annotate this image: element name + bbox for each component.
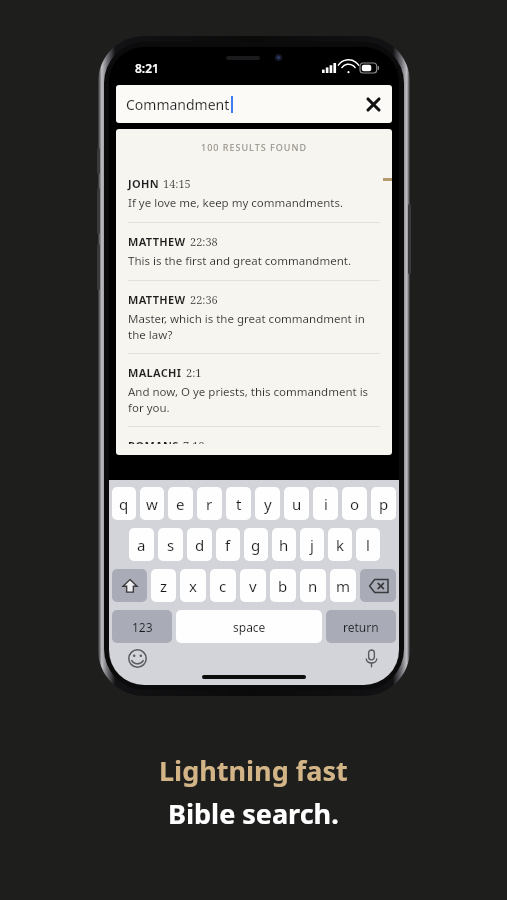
staticText: return bbox=[343, 619, 379, 635]
button[interactable]: Backspace bbox=[360, 569, 396, 602]
staticText: d bbox=[195, 535, 205, 555]
button[interactable]: Emoji bbox=[123, 644, 151, 672]
button[interactable]: ROMANS bbox=[116, 427, 392, 455]
staticText: 100 RESULTS FOUND bbox=[201, 141, 308, 153]
button[interactable]: j bbox=[300, 528, 324, 561]
button[interactable]: m bbox=[330, 569, 356, 602]
staticText: And now, O ye priests, this commandment … bbox=[128, 384, 380, 415]
staticText: MATTHEW bbox=[128, 292, 186, 307]
button[interactable]: k bbox=[328, 528, 352, 561]
staticText: f bbox=[225, 535, 231, 555]
staticText: m bbox=[336, 576, 351, 596]
staticText: q bbox=[119, 494, 129, 514]
button[interactable]: v bbox=[240, 569, 266, 602]
button[interactable]: o bbox=[342, 487, 367, 520]
button[interactable]: MATTHEW bbox=[116, 223, 392, 280]
button[interactable]: MALACHI bbox=[116, 354, 392, 426]
staticText: Master, which is the great commandment i… bbox=[128, 311, 380, 342]
staticText: If ye love me, keep my commandments. bbox=[128, 195, 343, 211]
staticText: g bbox=[251, 535, 261, 555]
staticText: b bbox=[278, 576, 288, 596]
staticText: MALACHI bbox=[128, 365, 182, 380]
staticText: i bbox=[324, 494, 328, 514]
button[interactable]: Commandment bbox=[116, 85, 392, 123]
staticText: s bbox=[167, 535, 175, 555]
staticText: w bbox=[146, 494, 158, 514]
staticText: Bible search. bbox=[168, 795, 339, 832]
staticText: z bbox=[160, 576, 168, 596]
button[interactable]: JOHN bbox=[116, 165, 392, 222]
button[interactable]: y bbox=[255, 487, 280, 520]
button[interactable]: x bbox=[180, 569, 206, 602]
staticText: This is the first and great commandment. bbox=[128, 253, 351, 269]
button[interactable]: s bbox=[158, 528, 183, 561]
staticText: 8:21 bbox=[135, 60, 159, 76]
button[interactable]: r bbox=[197, 487, 222, 520]
button[interactable]: g bbox=[244, 528, 268, 561]
staticText: a bbox=[137, 535, 146, 555]
button[interactable]: b bbox=[270, 569, 296, 602]
button[interactable]: l bbox=[356, 528, 380, 561]
staticText: h bbox=[279, 535, 289, 555]
button[interactable]: 123 bbox=[112, 610, 172, 643]
button[interactable]: Shift bbox=[112, 569, 147, 602]
button[interactable]: e bbox=[168, 487, 193, 520]
staticText: 123 bbox=[132, 619, 153, 635]
staticText: k bbox=[336, 535, 345, 555]
button[interactable]: f bbox=[216, 528, 240, 561]
staticText: MATTHEW bbox=[128, 234, 186, 249]
button[interactable]: a bbox=[129, 528, 154, 561]
button[interactable]: d bbox=[187, 528, 212, 561]
button[interactable]: space bbox=[176, 610, 322, 643]
staticText: 22:38 bbox=[190, 234, 218, 249]
button[interactable]: p bbox=[371, 487, 396, 520]
staticText: 14:15 bbox=[163, 176, 191, 191]
staticText: x bbox=[189, 576, 197, 596]
staticText: Commandment bbox=[126, 95, 230, 114]
button[interactable]: MATTHEW bbox=[116, 281, 392, 353]
staticText: t bbox=[236, 494, 242, 514]
staticText: o bbox=[350, 494, 360, 514]
button[interactable]: z bbox=[151, 569, 176, 602]
staticText: u bbox=[292, 494, 302, 514]
button[interactable]: w bbox=[140, 487, 164, 520]
staticText: j bbox=[310, 535, 314, 555]
staticText: 2:1 bbox=[186, 365, 202, 380]
button[interactable]: return bbox=[326, 610, 396, 643]
button[interactable]: u bbox=[284, 487, 309, 520]
staticText: 7:12 bbox=[183, 438, 205, 444]
staticText: c bbox=[219, 576, 227, 596]
staticText: JOHN bbox=[128, 176, 159, 191]
button[interactable]: n bbox=[300, 569, 326, 602]
staticText: Lightning fast bbox=[159, 752, 348, 789]
staticText: v bbox=[249, 576, 257, 596]
staticText: space bbox=[233, 619, 266, 635]
staticText: e bbox=[176, 494, 185, 514]
button[interactable]: Clear search bbox=[360, 91, 386, 117]
button[interactable]: Dictation bbox=[357, 644, 385, 672]
staticText: r bbox=[206, 494, 213, 514]
staticText: n bbox=[308, 576, 318, 596]
button[interactable]: h bbox=[272, 528, 296, 561]
staticText: y bbox=[264, 494, 272, 514]
staticText: p bbox=[379, 494, 389, 514]
button[interactable]: q bbox=[112, 487, 136, 520]
button[interactable]: c bbox=[210, 569, 236, 602]
staticText: ROMANS bbox=[128, 438, 179, 444]
button[interactable]: i bbox=[313, 487, 338, 520]
staticText: 22:36 bbox=[190, 292, 218, 307]
button[interactable]: t bbox=[226, 487, 251, 520]
staticText: l bbox=[366, 535, 370, 555]
